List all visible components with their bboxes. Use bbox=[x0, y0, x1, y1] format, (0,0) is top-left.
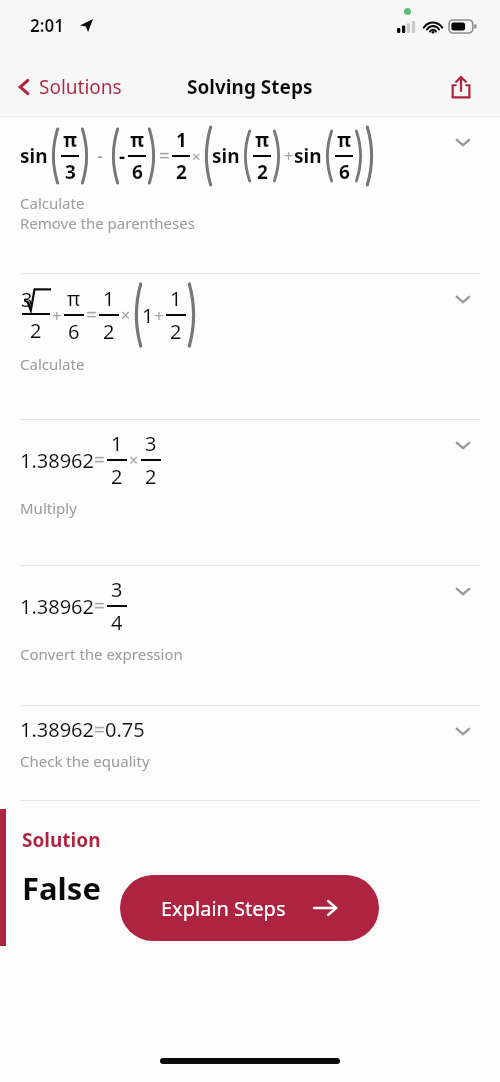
staticText: 1.38962 bbox=[20, 447, 94, 474]
staticText: 2 bbox=[145, 463, 157, 490]
staticText: 2:01 bbox=[30, 14, 64, 37]
staticText: Convert the expression bbox=[20, 644, 183, 664]
staticText: = bbox=[94, 593, 105, 619]
staticText: 6 bbox=[339, 159, 350, 185]
staticText: Explain Steps bbox=[161, 895, 286, 922]
staticText: Calculate bbox=[20, 193, 85, 213]
staticText: 2 bbox=[257, 159, 268, 185]
staticText: 1 bbox=[111, 430, 123, 457]
button[interactable]: sin bbox=[0, 117, 500, 274]
staticText: False bbox=[22, 867, 101, 909]
staticText: 2 bbox=[111, 463, 123, 490]
staticText: sin bbox=[212, 143, 240, 169]
button[interactable]: Solutions bbox=[12, 74, 122, 100]
staticText: Remove the parentheses bbox=[20, 213, 195, 233]
button[interactable]: 1.38962 bbox=[0, 420, 500, 566]
staticText: 2 bbox=[170, 318, 182, 345]
staticText: × bbox=[129, 449, 139, 471]
staticText: 2 bbox=[176, 159, 187, 185]
staticText: 1.38962 bbox=[20, 593, 94, 620]
staticText: Solution bbox=[22, 827, 101, 853]
staticText: + bbox=[284, 145, 294, 167]
staticText: 3 bbox=[21, 286, 33, 311]
staticText: 3 bbox=[145, 430, 157, 457]
staticText: π bbox=[255, 127, 270, 153]
staticText: + bbox=[52, 304, 62, 327]
button[interactable]: 3 bbox=[0, 274, 500, 420]
staticText: 1 bbox=[142, 302, 154, 329]
staticText: π bbox=[130, 127, 145, 153]
staticText: × bbox=[192, 146, 201, 166]
staticText: Solutions bbox=[39, 74, 122, 100]
button[interactable]: 1.38962 bbox=[0, 566, 500, 706]
staticText: π bbox=[63, 127, 78, 153]
staticText: = bbox=[86, 302, 97, 328]
staticText: = bbox=[94, 717, 105, 743]
staticText: - bbox=[119, 143, 126, 169]
staticText: = bbox=[159, 143, 170, 169]
staticText: 2 bbox=[30, 317, 42, 344]
staticText: 0.75 bbox=[105, 716, 145, 743]
staticText: Calculate bbox=[20, 354, 85, 374]
staticText: π bbox=[337, 127, 352, 153]
staticText: Solving Steps bbox=[187, 74, 313, 100]
staticText: Check the equality bbox=[20, 751, 150, 771]
staticText: 6 bbox=[132, 159, 143, 185]
staticText: + bbox=[154, 304, 164, 327]
staticText: 6 bbox=[68, 318, 80, 345]
staticText: 2 bbox=[103, 318, 115, 345]
staticText: 1 bbox=[176, 127, 187, 153]
button[interactable]: Share bbox=[444, 70, 478, 104]
staticText: sin bbox=[294, 143, 322, 169]
staticText: 3 bbox=[111, 576, 123, 603]
staticText: 1 bbox=[170, 285, 182, 312]
staticText: = bbox=[94, 447, 105, 473]
staticText: 3 bbox=[65, 159, 76, 185]
staticText: π bbox=[67, 285, 81, 312]
button[interactable]: 1.38962 bbox=[0, 706, 500, 801]
staticText: Multiply bbox=[20, 498, 77, 518]
staticText: 1.38962 bbox=[20, 716, 94, 743]
button[interactable]: Explain Steps bbox=[120, 875, 379, 941]
staticText: 4 bbox=[111, 609, 123, 636]
staticText: - bbox=[92, 143, 108, 169]
staticText: × bbox=[121, 304, 131, 326]
staticText: 1 bbox=[103, 285, 115, 312]
staticText: sin bbox=[20, 143, 48, 169]
